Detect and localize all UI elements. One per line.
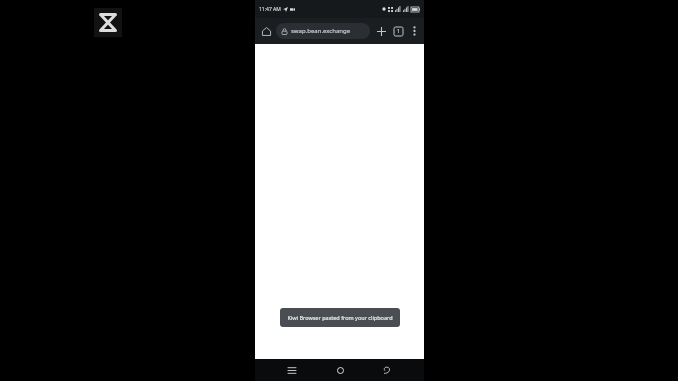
button[interactable]: Home [258, 23, 274, 39]
button[interactable]: Back [376, 359, 398, 381]
button[interactable]: Home [329, 359, 351, 381]
staticText: Kiwi Browser pasted from your clipboard [287, 314, 393, 321]
button[interactable]: swap.bean.exchange [276, 23, 370, 39]
staticText: swap.bean.exchange [291, 27, 351, 35]
button[interactable]: New tab [373, 23, 389, 39]
staticText: 11:47 AM [259, 6, 281, 13]
button[interactable]: More options [407, 24, 421, 38]
button[interactable]: Switch tabs, 1 open [390, 23, 406, 39]
button[interactable]: Recent apps [281, 359, 303, 381]
other: CapCut watermark [94, 8, 122, 37]
staticText: 1 [397, 28, 400, 35]
